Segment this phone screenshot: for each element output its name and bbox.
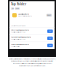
staticText: All [12, 8, 13, 9]
staticText: Get [49, 44, 51, 46]
staticText: Get [49, 30, 51, 32]
button[interactable]: Open [46, 14, 52, 17]
staticText: and the particular user interaction that… [10, 60, 53, 62]
staticText: explanatory paragraph of body copy. [18, 65, 45, 67]
staticText: Some caption text describing the screens… [8, 58, 55, 60]
staticText: Third row title goes here [11, 43, 29, 45]
staticText: Description text here [18, 15, 32, 17]
button[interactable]: Second row title goes here [9, 35, 55, 42]
staticText: Second row title goes here [11, 36, 31, 38]
button[interactable]: All [11, 7, 14, 10]
button[interactable]: Third row title goes here [9, 42, 55, 49]
staticText: Subtitle detail line for row [11, 31, 25, 33]
button[interactable]: First row title goes here [9, 28, 55, 35]
button[interactable]: New [15, 7, 20, 10]
staticText: First row title goes here [11, 29, 29, 31]
staticText: Subtitle detail line [11, 46, 20, 47]
staticText: Section header label [11, 25, 25, 27]
staticText: Open [47, 14, 51, 16]
staticText: Headline of card [18, 13, 29, 15]
staticText: the readers of this documentation page, … [12, 63, 51, 64]
staticText: Subtitle detail line for row [11, 38, 25, 40]
staticText: Top Folder [11, 2, 26, 6]
staticText: Get [49, 37, 51, 39]
staticText: New [16, 8, 19, 9]
